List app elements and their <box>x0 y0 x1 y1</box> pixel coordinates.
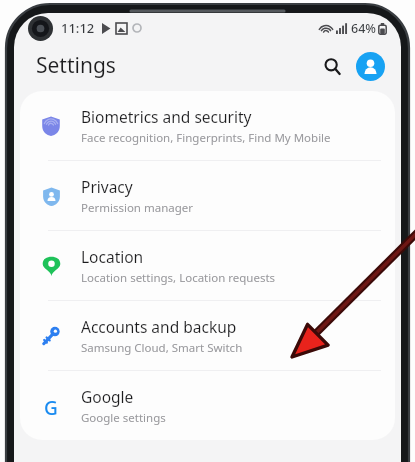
staticText: Permission manager <box>81 200 194 216</box>
staticText: Settings <box>36 51 116 80</box>
staticText: Privacy <box>81 176 133 197</box>
button[interactable]: Account <box>356 52 385 81</box>
button[interactable]: Search <box>316 50 348 82</box>
button[interactable]: Biometrics and security <box>20 91 395 160</box>
staticText: G <box>44 395 58 417</box>
staticText: Biometrics and security <box>81 106 252 127</box>
staticText: Location settings, Location requests <box>81 270 276 286</box>
staticText: Location <box>81 246 144 267</box>
staticText: Google <box>81 386 134 407</box>
staticText: Samsung Cloud, Smart Switch <box>81 340 243 356</box>
staticText: 64% <box>351 20 376 37</box>
button[interactable]: Accounts and backup <box>20 301 395 370</box>
staticText: 11:12 <box>61 19 95 37</box>
button[interactable]: Location <box>20 231 395 300</box>
staticText: Face recognition, Fingerprints, Find My … <box>81 130 331 146</box>
button[interactable]: G <box>20 371 395 440</box>
staticText: Google settings <box>81 410 166 426</box>
button[interactable]: Privacy <box>20 161 395 230</box>
staticText: Accounts and backup <box>81 316 237 337</box>
